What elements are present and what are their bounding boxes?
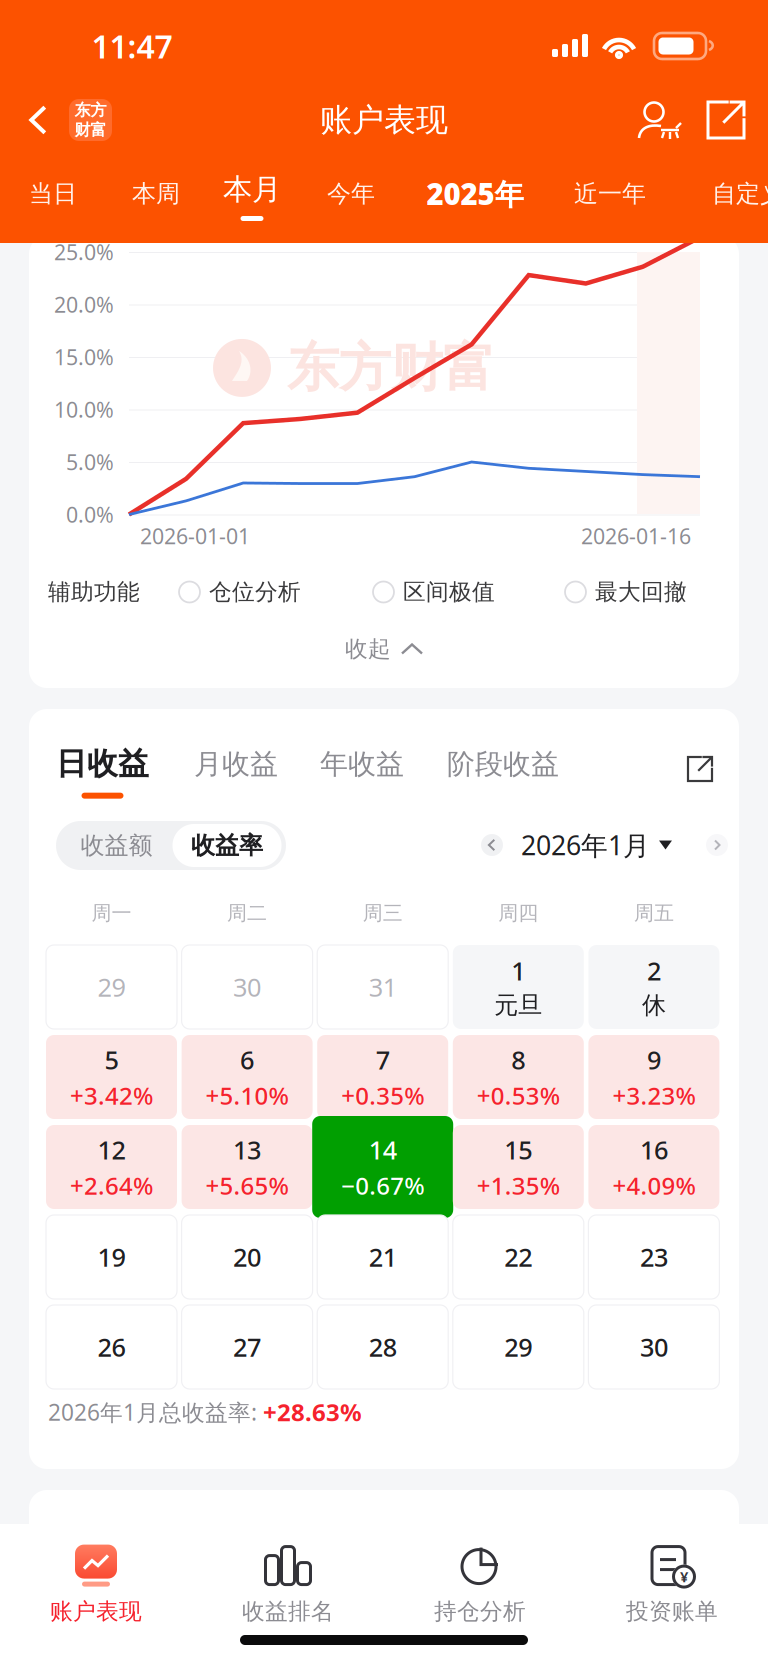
button[interactable]: 31 [317, 945, 448, 1029]
button[interactable]: 持仓分析 [384, 1538, 576, 1630]
button[interactable]: 29 [453, 1305, 584, 1389]
staticText: 30 [233, 970, 261, 1004]
staticText: 30 [640, 1330, 668, 1364]
button[interactable]: 今年 [266, 172, 436, 216]
button[interactable]: 6 [182, 1035, 313, 1119]
button[interactable]: 仓位分析 [179, 575, 314, 609]
staticText: 辅助功能 [48, 578, 140, 606]
staticText: ¥ [680, 1567, 688, 1586]
button[interactable]: 2 [588, 945, 719, 1029]
staticText: 最大回撤 [595, 578, 687, 606]
button[interactable]: 收益率 [172, 824, 281, 867]
staticText: +4.09% [612, 1169, 695, 1201]
staticText: 20.0% [54, 290, 114, 319]
button[interactable]: 14 [312, 1116, 453, 1218]
button[interactable]: 22 [453, 1215, 584, 1299]
staticText: 本周 [132, 179, 180, 208]
staticText: +0.35% [341, 1079, 424, 1111]
button[interactable]: 下个月 [706, 834, 728, 856]
staticText: 9 [647, 1043, 661, 1076]
staticText: 26 [97, 1330, 125, 1364]
button[interactable]: 本月 [167, 155, 337, 243]
staticText: 31 [369, 970, 397, 1004]
button[interactable]: 26 [46, 1305, 177, 1389]
button[interactable]: 23 [588, 1215, 719, 1299]
staticText: 28 [369, 1330, 397, 1364]
staticText: 2026-01-16 [581, 522, 691, 550]
button[interactable]: 8 [453, 1035, 584, 1119]
button[interactable]: 20 [182, 1215, 313, 1299]
staticText: 27 [233, 1330, 261, 1364]
button[interactable]: 账户表现 [0, 1538, 192, 1630]
button[interactable]: 年收益 [320, 747, 404, 797]
staticText: 日收益 [56, 745, 149, 783]
button[interactable]: 5 [46, 1035, 177, 1119]
staticText: 收益率 [191, 831, 263, 860]
staticText: 周三 [363, 901, 403, 925]
button[interactable]: 近一年 [525, 172, 695, 216]
staticText: 仓位分析 [209, 578, 301, 606]
button[interactable]: 本周 [71, 172, 241, 216]
staticText: +1.35% [477, 1169, 560, 1201]
staticText: +0.53% [477, 1079, 560, 1111]
staticText: −0.67% [341, 1169, 424, 1201]
staticText: 周二 [227, 901, 267, 925]
staticText: +2.64% [70, 1169, 153, 1201]
staticText: 5 [104, 1043, 118, 1076]
button[interactable]: 21 [317, 1215, 448, 1299]
button[interactable]: 2025年 [390, 172, 560, 216]
button[interactable]: 27 [182, 1305, 313, 1389]
button[interactable]: 自定义 [663, 172, 768, 216]
button[interactable]: 9 [588, 1035, 719, 1119]
staticText: 12 [97, 1133, 125, 1166]
button[interactable]: 阶段收益 [447, 747, 559, 797]
button[interactable]: 16 [588, 1125, 719, 1209]
button[interactable]: 当日 [0, 172, 138, 216]
staticText: 月收益 [194, 747, 278, 781]
button[interactable]: 15 [453, 1125, 584, 1209]
button[interactable]: 29 [46, 945, 177, 1029]
staticText: 6 [240, 1043, 254, 1076]
button[interactable]: 30 [182, 945, 313, 1029]
button[interactable]: 13 [182, 1125, 313, 1209]
staticText: 1 [511, 954, 525, 987]
staticText: 19 [97, 1240, 125, 1274]
button[interactable]: 2026年1月 [521, 825, 672, 865]
staticText: 账户表现 [320, 100, 448, 140]
button[interactable]: 分享 [694, 85, 758, 155]
button[interactable]: 收益额 [60, 824, 172, 867]
staticText: 周五 [634, 901, 674, 925]
staticText: 收益额 [80, 831, 152, 860]
staticText: +3.42% [70, 1079, 153, 1111]
staticText: 15.0% [54, 343, 114, 371]
staticText: 年收益 [320, 747, 404, 781]
button[interactable]: ¥ [576, 1538, 768, 1630]
staticText: 23 [640, 1240, 668, 1274]
button[interactable]: 上个月 [481, 834, 503, 856]
staticText: 2026年1月 [521, 827, 650, 863]
button[interactable]: 19 [46, 1215, 177, 1299]
button[interactable]: 月收益 [194, 747, 278, 797]
button[interactable]: 收益排名 [192, 1538, 384, 1630]
staticText: 持仓分析 [434, 1598, 526, 1625]
button[interactable]: 12 [46, 1125, 177, 1209]
button[interactable]: 日收益 [56, 745, 149, 799]
button[interactable]: 30 [588, 1305, 719, 1389]
button[interactable]: 28 [317, 1305, 448, 1389]
staticText: 2025年 [426, 174, 523, 213]
button[interactable]: 7 [317, 1035, 448, 1119]
button[interactable]: 返回 [23, 85, 137, 155]
staticText: 2026年1月总收益率: [48, 1397, 263, 1427]
button[interactable]: 收起 [284, 625, 484, 673]
button[interactable]: 分享收益 [678, 747, 722, 791]
button[interactable]: 我的账户 [625, 85, 695, 155]
button[interactable]: 最大回撤 [565, 575, 700, 609]
button[interactable]: 区间极值 [373, 575, 508, 609]
button[interactable]: 1 [453, 945, 584, 1029]
staticText: 0.0% [66, 500, 114, 529]
staticText: 近一年 [574, 179, 646, 208]
staticText: 财富 [74, 120, 106, 140]
staticText: 29 [504, 1330, 532, 1364]
staticText: 阶段收益 [447, 747, 559, 781]
staticText: 本月 [223, 171, 281, 207]
